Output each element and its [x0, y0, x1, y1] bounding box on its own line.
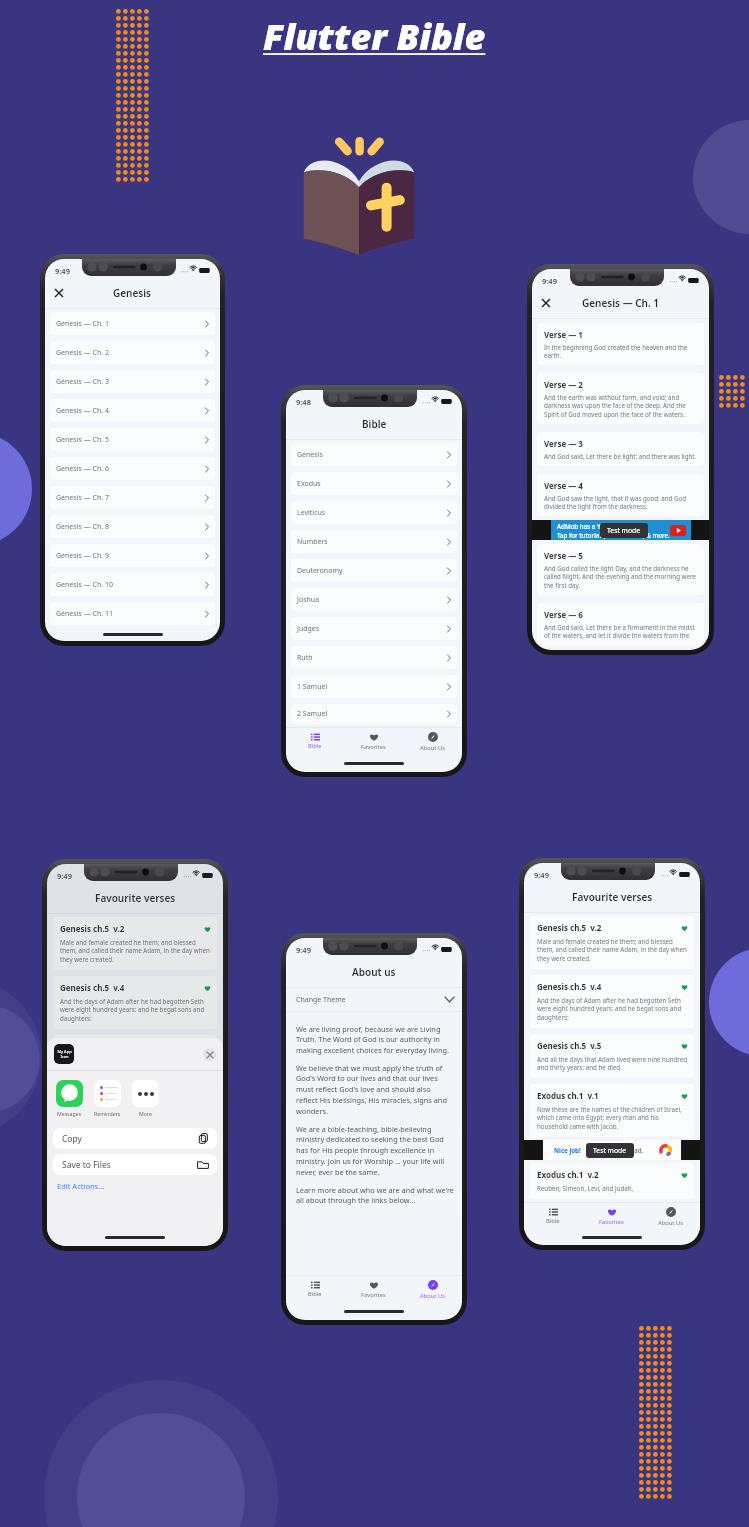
button[interactable]: Verse — 3 [537, 432, 704, 466]
button[interactable]: Exodus ch.1 v.2 [530, 1163, 694, 1199]
button[interactable]: Change Theme [286, 988, 462, 1011]
staticText: Favourite verses [95, 891, 176, 905]
button[interactable]: Genesis ch.5 v.5 [53, 1035, 217, 1079]
button[interactable]: Genesis — Ch. 1 [50, 312, 215, 335]
button[interactable]: Verse — 1 [537, 323, 704, 365]
staticText: About Us [658, 1219, 683, 1227]
staticText: Exodus ch.1 v.1 [537, 1090, 599, 1101]
staticText: 9:49 [55, 266, 70, 276]
button[interactable]: Exodus [291, 472, 457, 495]
button[interactable]: Genesis — Ch. 9 [50, 544, 215, 567]
button[interactable]: 2 Samuel [291, 704, 457, 724]
button[interactable]: Close [51, 285, 67, 301]
button[interactable]: About Us [403, 728, 462, 755]
button[interactable]: Genesis — Ch. 6 [50, 457, 215, 480]
staticText: Bible [362, 417, 387, 431]
staticText: Verse — 3 [544, 438, 583, 449]
staticText: Genesis ch.5 v.4 [60, 982, 125, 993]
staticText: Genesis — Ch. 2 [56, 348, 109, 358]
staticText: 2 Samuel [297, 709, 328, 719]
button[interactable]: Deuteronomy [291, 559, 457, 582]
staticText: Verse — 6 [544, 609, 583, 620]
staticText: Genesis [297, 450, 323, 460]
staticText: Genesis — Ch. 8 [56, 522, 109, 532]
button[interactable]: Judges [291, 617, 457, 640]
button[interactable]: Genesis ch.5 v.2 [530, 916, 694, 969]
staticText: Genesis — Ch. 3 [56, 377, 109, 387]
staticText: Verse — 5 [544, 550, 583, 561]
button[interactable]: Save to Files [53, 1154, 217, 1175]
button[interactable]: Copy [53, 1128, 217, 1149]
button[interactable]: Genesis ch.5 v.5 [530, 1034, 694, 1078]
button[interactable]: More [132, 1080, 159, 1117]
button[interactable]: Reminders [94, 1080, 121, 1117]
staticText: Bible [546, 1217, 560, 1225]
staticText: Genesis [113, 286, 152, 300]
staticText: Tap for tutorials, screenshots, & more. [557, 531, 670, 539]
staticText: Verse — 1 [544, 329, 583, 340]
staticText: 9:48 [296, 397, 311, 407]
button[interactable]: Bible [286, 728, 344, 755]
button[interactable]: Genesis — Ch. 7 [50, 486, 215, 509]
button[interactable]: Genesis ch.5 v.4 [53, 976, 217, 1029]
button[interactable]: Bible [286, 1276, 344, 1303]
staticText: And God said, Let there be a firmament i… [544, 623, 698, 640]
staticText: Nice job! [554, 1146, 581, 1154]
button[interactable]: Messages [56, 1080, 83, 1117]
button[interactable]: Favorites [344, 728, 403, 755]
button[interactable]: Edit Actions... [57, 1181, 105, 1191]
staticText: Save to Files [62, 1159, 111, 1171]
staticText: Change Theme [296, 995, 346, 1005]
button[interactable]: Exodus ch.1 v.1 [530, 1084, 694, 1137]
button[interactable]: 1 Samuel [291, 675, 457, 698]
button[interactable]: Ruth [291, 646, 457, 669]
button[interactable]: Numbers [291, 530, 457, 553]
button[interactable]: About Us [641, 1203, 700, 1230]
button[interactable]: Genesis — Ch. 8 [50, 515, 215, 538]
button[interactable]: Verse — 2 [537, 373, 704, 424]
button[interactable]: Bible [524, 1203, 582, 1230]
button[interactable]: Genesis ch.5 v.2 [53, 917, 217, 970]
button[interactable]: Genesis — Ch. 4 [50, 399, 215, 422]
staticText: In the beginning God created the heaven … [544, 343, 698, 359]
button[interactable]: Favorites [344, 1276, 403, 1303]
button[interactable]: Genesis — Ch. 2 [50, 341, 215, 364]
staticText: About Us [420, 744, 445, 752]
button[interactable]: Genesis [291, 443, 457, 466]
staticText: Test mode [607, 526, 641, 535]
button[interactable]: Genesis — Ch. 3 [50, 370, 215, 393]
staticText: And the earth was without form, and void… [544, 393, 698, 418]
staticText: Numbers [297, 537, 328, 547]
staticText: About us [352, 965, 396, 979]
button[interactable]: Close [538, 295, 554, 311]
button[interactable]: About Us [403, 1276, 462, 1303]
staticText: est ad. [624, 1146, 644, 1154]
button[interactable]: Verse — 4 [537, 474, 704, 516]
button[interactable]: Genesis ch.5 v.4 [530, 975, 694, 1028]
button[interactable]: Genesis — Ch. 11 [50, 602, 215, 625]
staticText: Favorites [361, 1291, 386, 1299]
button[interactable]: Favorites [582, 1203, 641, 1230]
staticText: We are living proof, because we are Livi… [296, 1024, 454, 1055]
staticText: Exodus ch.1 v.2 [537, 1169, 599, 1180]
staticText: Male and female created he them; and ble… [60, 938, 211, 963]
staticText: 9:49 [296, 945, 311, 955]
staticText: Favorites [361, 743, 386, 751]
staticText: Genesis — Ch. 1 [582, 296, 660, 310]
button[interactable]: Leviticus [291, 501, 457, 524]
staticText: Bible [308, 742, 322, 750]
staticText: Genesis — Ch. 1 [56, 319, 109, 329]
staticText: Genesis ch.5 v.5 [537, 1040, 602, 1051]
button[interactable]: Genesis — Ch. 10 [50, 573, 215, 596]
staticText: Learn more about who we are and what we'… [296, 1185, 454, 1205]
button[interactable]: Verse — 5 [537, 544, 704, 595]
staticText: Joshua [297, 595, 320, 605]
staticText: Favourite verses [572, 890, 653, 904]
button[interactable]: Verse — 6 [537, 603, 704, 646]
button[interactable]: Genesis — Ch. 5 [50, 428, 215, 451]
button[interactable]: Close [203, 1048, 216, 1061]
staticText: Reuben, Simeon, Levi, and Judah, [537, 1184, 634, 1192]
staticText: Genesis — Ch. 5 [56, 435, 109, 445]
staticText: And the days of Adam after he had begott… [60, 997, 211, 1022]
button[interactable]: Joshua [291, 588, 457, 611]
